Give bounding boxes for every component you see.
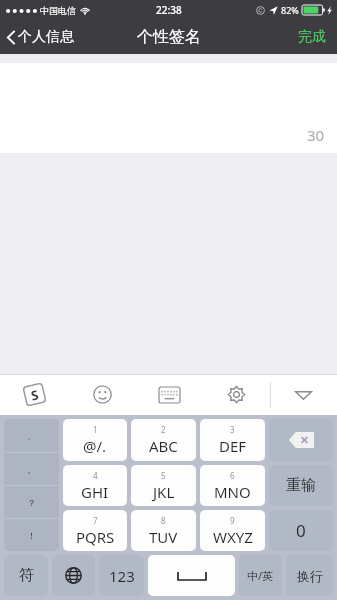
button[interactable]: 7 (63, 510, 127, 551)
button[interactable]: 3 (200, 419, 265, 461)
staticText: 4 (93, 470, 98, 481)
staticText: 82% (281, 4, 299, 16)
button[interactable]: 符 (4, 555, 48, 596)
button[interactable]: 中/英 (239, 555, 282, 596)
button[interactable]: 8 (131, 510, 196, 551)
staticText: 22:38 (156, 3, 182, 17)
staticText: 换行 (297, 568, 323, 584)
staticText: PQRS (76, 527, 115, 547)
button[interactable]: Space (148, 555, 235, 596)
button[interactable]: 重输 (269, 465, 333, 506)
staticText: 7 (93, 515, 98, 526)
button[interactable]: Keyboard layout (136, 374, 203, 415)
staticText: 个性签名 (137, 27, 201, 47)
staticText: 符 (19, 566, 34, 585)
staticText: 6 (230, 470, 235, 481)
staticText: WXYZ (213, 527, 253, 547)
button[interactable]: 0 (269, 510, 333, 551)
button[interactable]: 30 (0, 63, 337, 153)
staticText: 2 (161, 424, 166, 435)
button[interactable]: 个人信息 (0, 23, 84, 51)
button[interactable]: 9 (200, 510, 265, 551)
staticText: 。 (27, 464, 36, 475)
staticText: 中国电信 (40, 5, 76, 16)
staticText: 0 (296, 519, 306, 542)
staticText: 9 (230, 515, 235, 526)
button[interactable]: 4 (63, 465, 127, 506)
staticText: 3 (230, 424, 235, 435)
staticText: GHI (81, 482, 109, 502)
staticText: 5 (161, 470, 166, 481)
staticText: MNO (214, 482, 251, 502)
staticText: 、 (27, 430, 36, 441)
staticText: 完成 (298, 28, 326, 46)
staticText: ！ (27, 530, 36, 541)
staticText: S (29, 385, 41, 405)
staticText: 中/英 (247, 568, 274, 583)
button[interactable]: 换行 (286, 555, 333, 596)
staticText: 123 (109, 566, 135, 586)
button[interactable]: ！ (4, 519, 59, 551)
staticText: 8 (161, 515, 166, 526)
staticText: @/. (83, 436, 107, 456)
staticText: 个人信息 (18, 28, 74, 46)
staticText: ABC (149, 436, 178, 456)
button[interactable]: Switch input language (52, 555, 95, 596)
staticText: 30 (307, 125, 325, 145)
button[interactable]: 完成 (287, 21, 337, 53)
button[interactable]: ？ (4, 486, 59, 518)
staticText: TUV (149, 527, 178, 547)
staticText: ？ (27, 497, 36, 508)
staticText: 重输 (286, 476, 316, 495)
button[interactable]: Sogou input (0, 374, 68, 415)
button[interactable]: 2 (131, 419, 196, 461)
staticText: DEF (219, 436, 247, 456)
button[interactable]: 1 (63, 419, 127, 461)
button[interactable]: Backspace (269, 419, 333, 461)
button[interactable]: 123 (99, 555, 144, 596)
button[interactable]: 6 (200, 465, 265, 506)
staticText: JKL (153, 482, 175, 502)
button[interactable]: 5 (131, 465, 196, 506)
button[interactable]: Settings (203, 374, 270, 415)
button[interactable]: Hide keyboard (270, 374, 337, 415)
button[interactable]: Emoji (68, 374, 136, 415)
staticText: 1 (93, 424, 98, 435)
